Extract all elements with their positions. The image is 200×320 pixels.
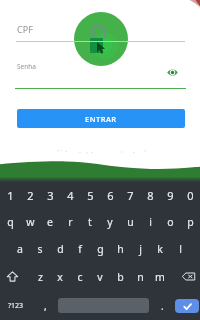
staticText: a <box>17 242 23 256</box>
staticText: n <box>137 270 144 284</box>
button[interactable]: k <box>150 235 170 262</box>
staticText: l <box>179 242 182 256</box>
button[interactable]: b <box>110 262 130 291</box>
button[interactable]: i <box>140 208 160 235</box>
staticText: g <box>97 242 104 256</box>
button[interactable]: d <box>50 235 70 262</box>
button[interactable]: a <box>10 235 30 262</box>
staticText: t <box>88 215 92 229</box>
button[interactable]: h <box>110 235 130 262</box>
button[interactable]: x <box>50 262 70 291</box>
staticText: p <box>187 215 194 229</box>
button[interactable]: t <box>80 208 100 235</box>
button[interactable]: Enter <box>175 299 199 313</box>
button[interactable]: 5 <box>80 182 100 208</box>
staticText: x <box>57 270 63 284</box>
staticText: 9 <box>167 188 174 203</box>
button[interactable]: 6 <box>100 182 120 208</box>
button[interactable]: , <box>32 291 58 320</box>
staticText: 8 <box>147 188 154 203</box>
button[interactable]: z <box>30 262 50 291</box>
button[interactable]: . <box>149 291 175 320</box>
button[interactable]: s <box>30 235 50 262</box>
staticText: i <box>149 215 152 229</box>
staticText: q <box>7 215 14 229</box>
button[interactable]: Backspace <box>176 262 200 291</box>
staticText: 0 <box>187 188 194 203</box>
button[interactable]: q <box>0 208 20 235</box>
button[interactable]: l <box>170 235 190 262</box>
staticText: ENTRAR <box>85 114 117 124</box>
button[interactable]: 0 <box>180 182 200 208</box>
button[interactable]: Shift <box>0 262 24 291</box>
staticText: v <box>97 270 103 284</box>
staticText: 2 <box>27 188 34 203</box>
button[interactable]: o <box>160 208 180 235</box>
staticText: 3 <box>47 188 54 203</box>
staticText: k <box>157 242 163 256</box>
button[interactable]: c <box>70 262 90 291</box>
button[interactable]: w <box>20 208 40 235</box>
staticText: Senha <box>17 62 36 71</box>
staticText: e <box>47 215 53 229</box>
staticText: , <box>44 299 47 313</box>
staticText: f <box>78 242 82 256</box>
button[interactable]: g <box>90 235 110 262</box>
staticText: 7 <box>127 188 134 203</box>
staticText: o <box>167 215 174 229</box>
staticText: u <box>127 215 134 229</box>
button[interactable]: e <box>40 208 60 235</box>
staticText: 4 <box>67 188 74 203</box>
staticText: . <box>161 299 164 313</box>
button[interactable]: ENTRAR <box>17 109 185 128</box>
button[interactable]: u <box>120 208 140 235</box>
staticText: y <box>107 215 113 229</box>
button[interactable]: 1 <box>0 182 20 208</box>
staticText: j <box>139 242 142 256</box>
staticText: r <box>68 215 73 229</box>
staticText: CPF <box>17 23 33 35</box>
button[interactable]: 7 <box>120 182 140 208</box>
button[interactable]: Show password <box>163 63 182 81</box>
button[interactable]: 3 <box>40 182 60 208</box>
staticText: w <box>26 215 35 229</box>
staticText: h <box>117 242 124 256</box>
button[interactable]: 2 <box>20 182 40 208</box>
staticText: z <box>38 270 43 284</box>
staticText: 1 <box>7 188 14 203</box>
staticText: d <box>57 242 64 256</box>
button[interactable]: y <box>100 208 120 235</box>
button[interactable]: 4 <box>60 182 80 208</box>
staticText: 5 <box>87 188 94 203</box>
button[interactable]: n <box>130 262 150 291</box>
button[interactable]: p <box>180 208 200 235</box>
button[interactable]: m <box>150 262 170 291</box>
button[interactable]: f <box>70 235 90 262</box>
button[interactable]: 8 <box>140 182 160 208</box>
staticText: ?123 <box>8 301 24 311</box>
button[interactable]: j <box>130 235 150 262</box>
button[interactable]: r <box>60 208 80 235</box>
button[interactable]: ?123 <box>0 291 32 320</box>
staticText: b <box>117 270 124 284</box>
staticText: c <box>77 270 83 284</box>
staticText: s <box>37 242 43 256</box>
button[interactable]: 9 <box>160 182 180 208</box>
staticText: 6 <box>107 188 114 203</box>
button[interactable]: v <box>90 262 110 291</box>
staticText: m <box>155 270 165 284</box>
